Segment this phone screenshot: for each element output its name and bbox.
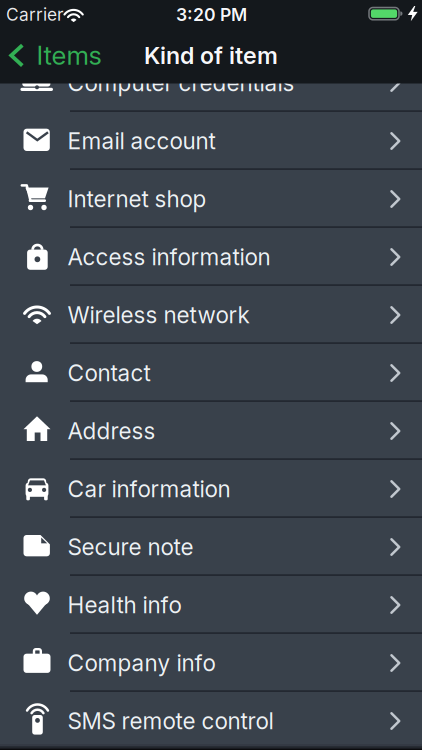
staticText: Computer credentials — [67, 69, 294, 97]
button[interactable]: Address — [0, 402, 422, 460]
button[interactable]: Car information — [0, 460, 422, 518]
staticText: Address — [67, 417, 155, 445]
staticText: Wireless network — [67, 301, 249, 329]
staticText: 3:20 PM — [176, 4, 247, 25]
button[interactable]: Health info — [0, 576, 422, 634]
button[interactable]: Access information — [0, 228, 422, 286]
staticText: Contact — [67, 359, 150, 387]
button[interactable]: Email account — [0, 112, 422, 170]
staticText: Secure note — [67, 533, 193, 561]
button[interactable]: Internet shop — [0, 170, 422, 228]
button[interactable]: Computer credentials — [0, 54, 422, 112]
button[interactable]: Contact — [0, 344, 422, 402]
staticText: Company info — [67, 649, 215, 677]
staticText: SMS remote control — [67, 707, 273, 735]
staticText: Email account — [67, 127, 215, 155]
staticText: Items — [36, 40, 101, 71]
staticText: Kind of item — [144, 41, 278, 69]
staticText: Carrier — [6, 4, 64, 25]
button[interactable]: Secure note — [0, 518, 422, 576]
button[interactable]: SMS remote control — [0, 692, 422, 750]
button[interactable]: Wireless network — [0, 286, 422, 344]
staticText: Access information — [67, 243, 270, 271]
staticText: Internet shop — [67, 185, 206, 213]
button[interactable]: Company info — [0, 634, 422, 692]
staticText: Car information — [67, 475, 230, 503]
staticText: Health info — [67, 591, 181, 619]
button[interactable]: Back — [0, 0, 120, 83]
